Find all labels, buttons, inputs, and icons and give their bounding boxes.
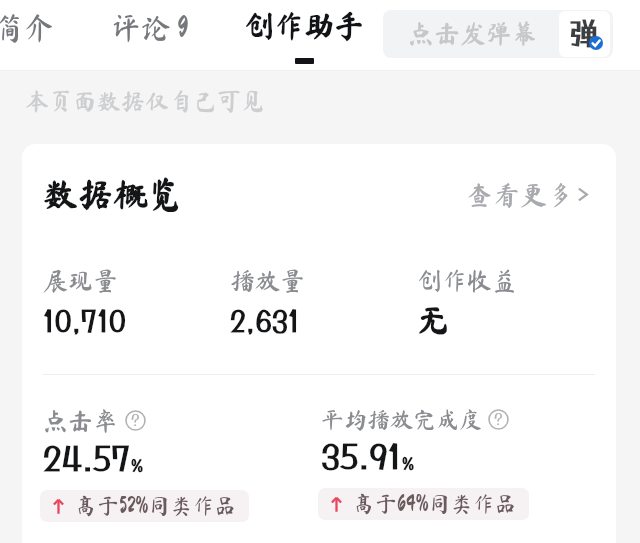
button[interactable]: 播放量: [230, 268, 306, 338]
button[interactable]: 展现量: [43, 268, 126, 338]
button[interactable]: 简介: [0, 13, 60, 43]
staticText: %: [131, 455, 144, 475]
staticText: 无: [417, 304, 450, 336]
staticText: ?: [494, 409, 503, 428]
button[interactable]: 数据概览: [43, 176, 184, 211]
staticText: 展现量: [43, 268, 119, 293]
button[interactable]: 点击率: [40, 408, 249, 522]
staticText: 评论 9: [111, 13, 189, 43]
staticText: 平均播放完成度: [321, 408, 482, 431]
staticText: 数据概览: [43, 176, 184, 211]
staticText: 35.91: [321, 436, 402, 476]
staticText: 查看更多: [466, 181, 574, 208]
staticText: 24.57: [43, 438, 131, 478]
button[interactable]: 查看更多: [462, 181, 593, 208]
staticText: 2,631: [230, 304, 300, 338]
button[interactable]: Danmaku settings: [559, 11, 610, 57]
staticText: %: [402, 453, 415, 473]
button[interactable]: 评论 9: [105, 13, 195, 43]
button[interactable]: 创作助手: [239, 11, 369, 64]
staticText: 播放量: [230, 268, 306, 293]
staticText: 创作助手: [244, 11, 364, 41]
staticText: ?: [131, 410, 140, 429]
staticText: 创作收益: [417, 268, 518, 293]
button[interactable]: 创作收益: [417, 268, 518, 336]
staticText: 弹: [569, 16, 599, 51]
staticText: 简介: [0, 13, 54, 43]
button[interactable]: 点击发弹幕: [383, 10, 613, 58]
staticText: 点击发弹幕: [408, 20, 539, 46]
staticText: 高于64%同类作品: [353, 493, 517, 515]
staticText: 点击率: [43, 408, 119, 433]
button[interactable]: 本页面数据仅自己可见: [19, 89, 271, 113]
button[interactable]: 平均播放完成度: [318, 408, 529, 520]
staticText: 10,710: [43, 304, 126, 338]
staticText: 高于52%同类作品: [75, 495, 237, 517]
staticText: 本页面数据仅自己可见: [25, 89, 265, 113]
